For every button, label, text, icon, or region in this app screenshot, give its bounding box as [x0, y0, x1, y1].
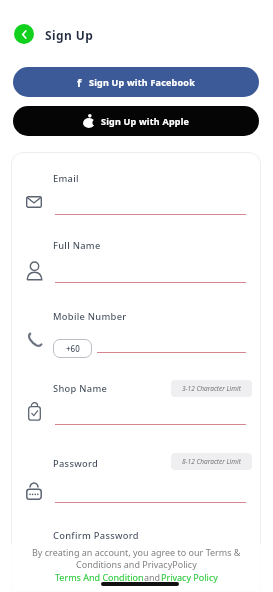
staticText: Sign Up with Facebook [89, 76, 195, 88]
staticText: By creating an account, you agree to our… [32, 546, 241, 558]
staticText: +60 [66, 343, 80, 354]
staticText: Password [53, 457, 99, 470]
staticText: 3-12 Character Limit [182, 384, 241, 393]
staticText: Conditions and PrivacyPolicy [76, 558, 197, 570]
staticText: and [144, 571, 161, 583]
button[interactable]: Privacy Policy [161, 571, 218, 583]
staticText: f [77, 75, 82, 90]
staticText: Email [53, 172, 79, 185]
button[interactable] [14, 24, 34, 44]
staticText: Sign Up with Apple [101, 115, 190, 127]
staticText: Full Name [53, 239, 101, 252]
staticText: Confirm Password [53, 529, 139, 542]
staticText: Mobile Number [53, 310, 127, 323]
staticText: 8-12 Character Limit [182, 457, 241, 466]
button[interactable]: +60 [53, 339, 92, 358]
staticText: Shop Name [53, 382, 108, 395]
button[interactable]: f [13, 67, 259, 97]
staticText: Sign Up [45, 27, 94, 43]
button[interactable]: Sign Up with Apple [13, 106, 259, 136]
button[interactable]: Terms And Condition [55, 571, 144, 583]
